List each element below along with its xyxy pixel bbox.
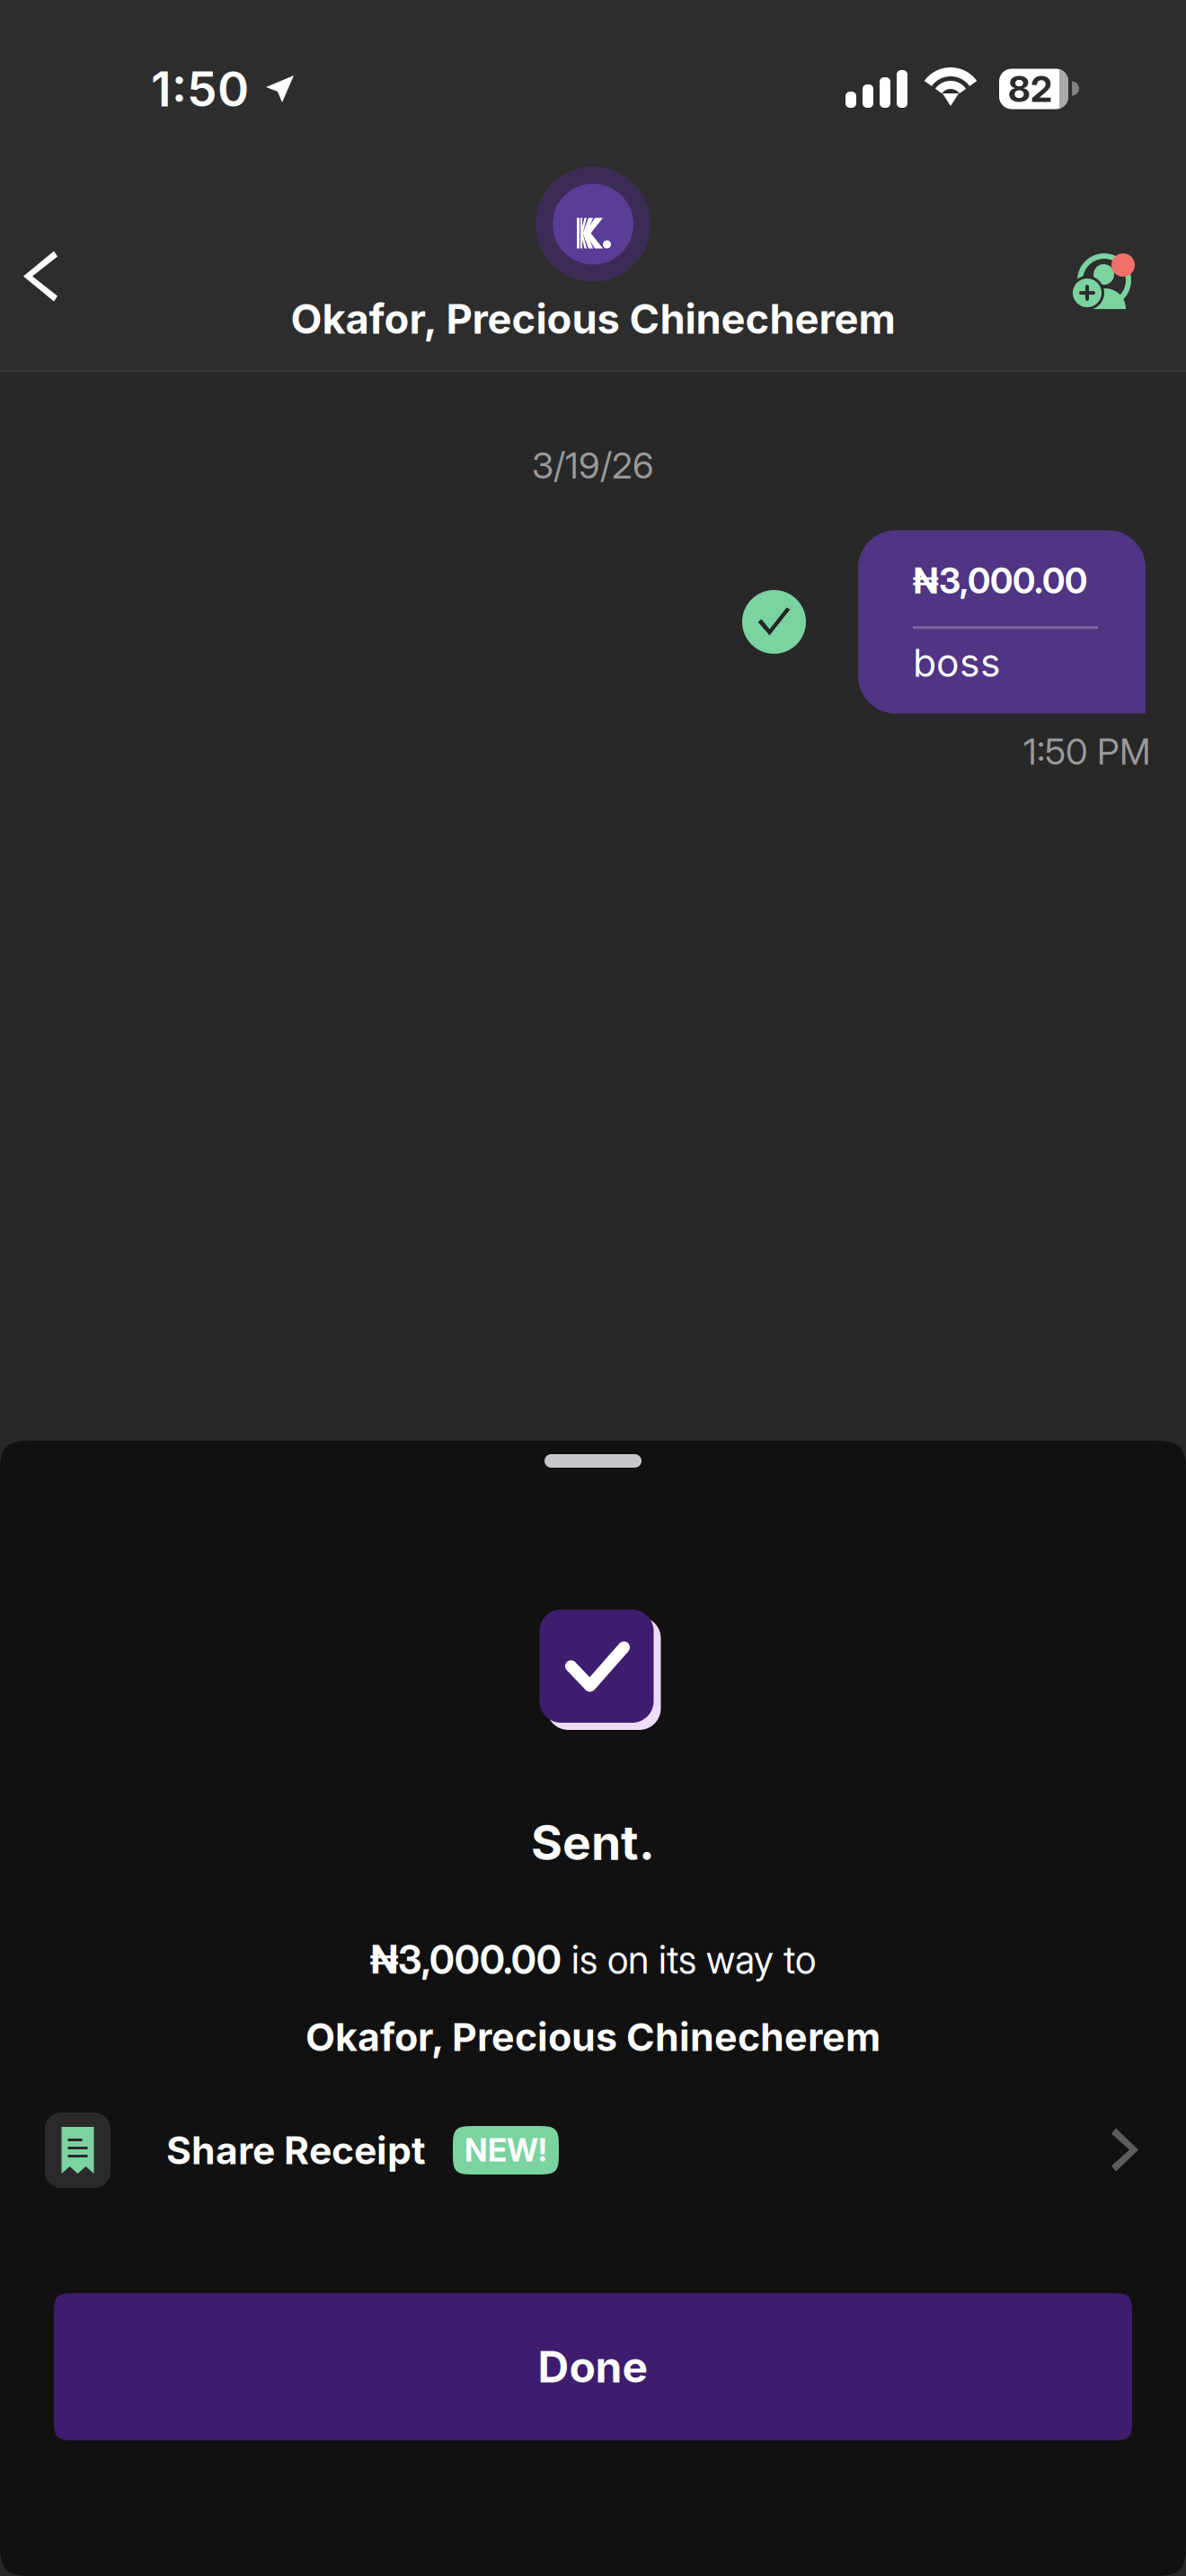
staticText: Okafor, Precious Chinecherem: [291, 294, 895, 344]
button[interactable]: Add person: [1059, 233, 1186, 320]
staticText: Share Receipt: [166, 2127, 426, 2173]
staticText: 1:50: [151, 60, 249, 118]
staticText: 3/19/26: [532, 444, 654, 487]
staticText: 82: [1008, 67, 1052, 111]
staticText: boss: [913, 640, 1001, 686]
staticText: NEW!: [465, 2131, 547, 2169]
button[interactable]: Done: [0, 2293, 1186, 2440]
staticText: is on its way to: [562, 1936, 816, 1983]
staticText: Done: [538, 2341, 648, 2393]
staticText: Sent.: [531, 1813, 655, 1871]
staticText: Okafor, Precious Chinecherem: [305, 2014, 881, 2060]
button[interactable]: Share Receipt: [0, 2098, 1186, 2202]
staticText: ₦3,000.00: [370, 1936, 562, 1983]
button[interactable]: Back: [0, 217, 88, 336]
staticText: 1:50 PM: [1023, 730, 1150, 773]
staticText: ₦3,000.00: [913, 560, 1087, 602]
